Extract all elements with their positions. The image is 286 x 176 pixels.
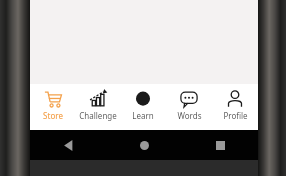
button[interactable]: Profile <box>212 84 258 130</box>
button[interactable]: Home <box>134 135 154 155</box>
staticText: Learn <box>132 110 154 121</box>
button[interactable]: Recent apps <box>210 135 230 155</box>
button[interactable]: Challenge <box>75 84 120 130</box>
button[interactable]: Back <box>58 135 78 155</box>
button[interactable]: Store <box>30 84 75 130</box>
staticText: Profile <box>223 110 248 121</box>
button[interactable]: Learn <box>120 84 166 130</box>
button[interactable]: Words <box>166 84 212 130</box>
staticText: Words <box>177 110 202 121</box>
staticText: Challenge <box>79 110 117 121</box>
staticText: Store <box>43 110 63 121</box>
